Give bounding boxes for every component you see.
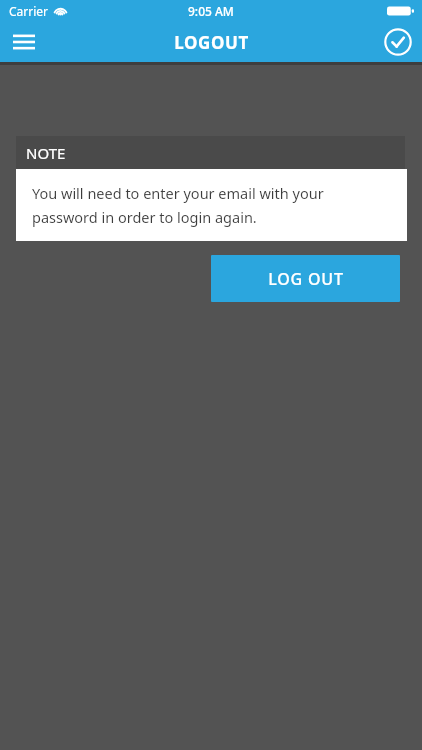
staticText: You will need to enter your email with y… — [32, 183, 393, 227]
button[interactable]: Confirm — [374, 22, 422, 62]
staticText: LOGOUT — [174, 31, 249, 54]
staticText: 9:05 AM — [188, 3, 234, 19]
staticText: LOG OUT — [268, 268, 344, 290]
button[interactable]: LOG OUT — [211, 255, 400, 302]
button[interactable]: Menu — [0, 22, 48, 62]
staticText: Carrier — [9, 3, 49, 19]
staticText: NOTE — [26, 143, 66, 163]
